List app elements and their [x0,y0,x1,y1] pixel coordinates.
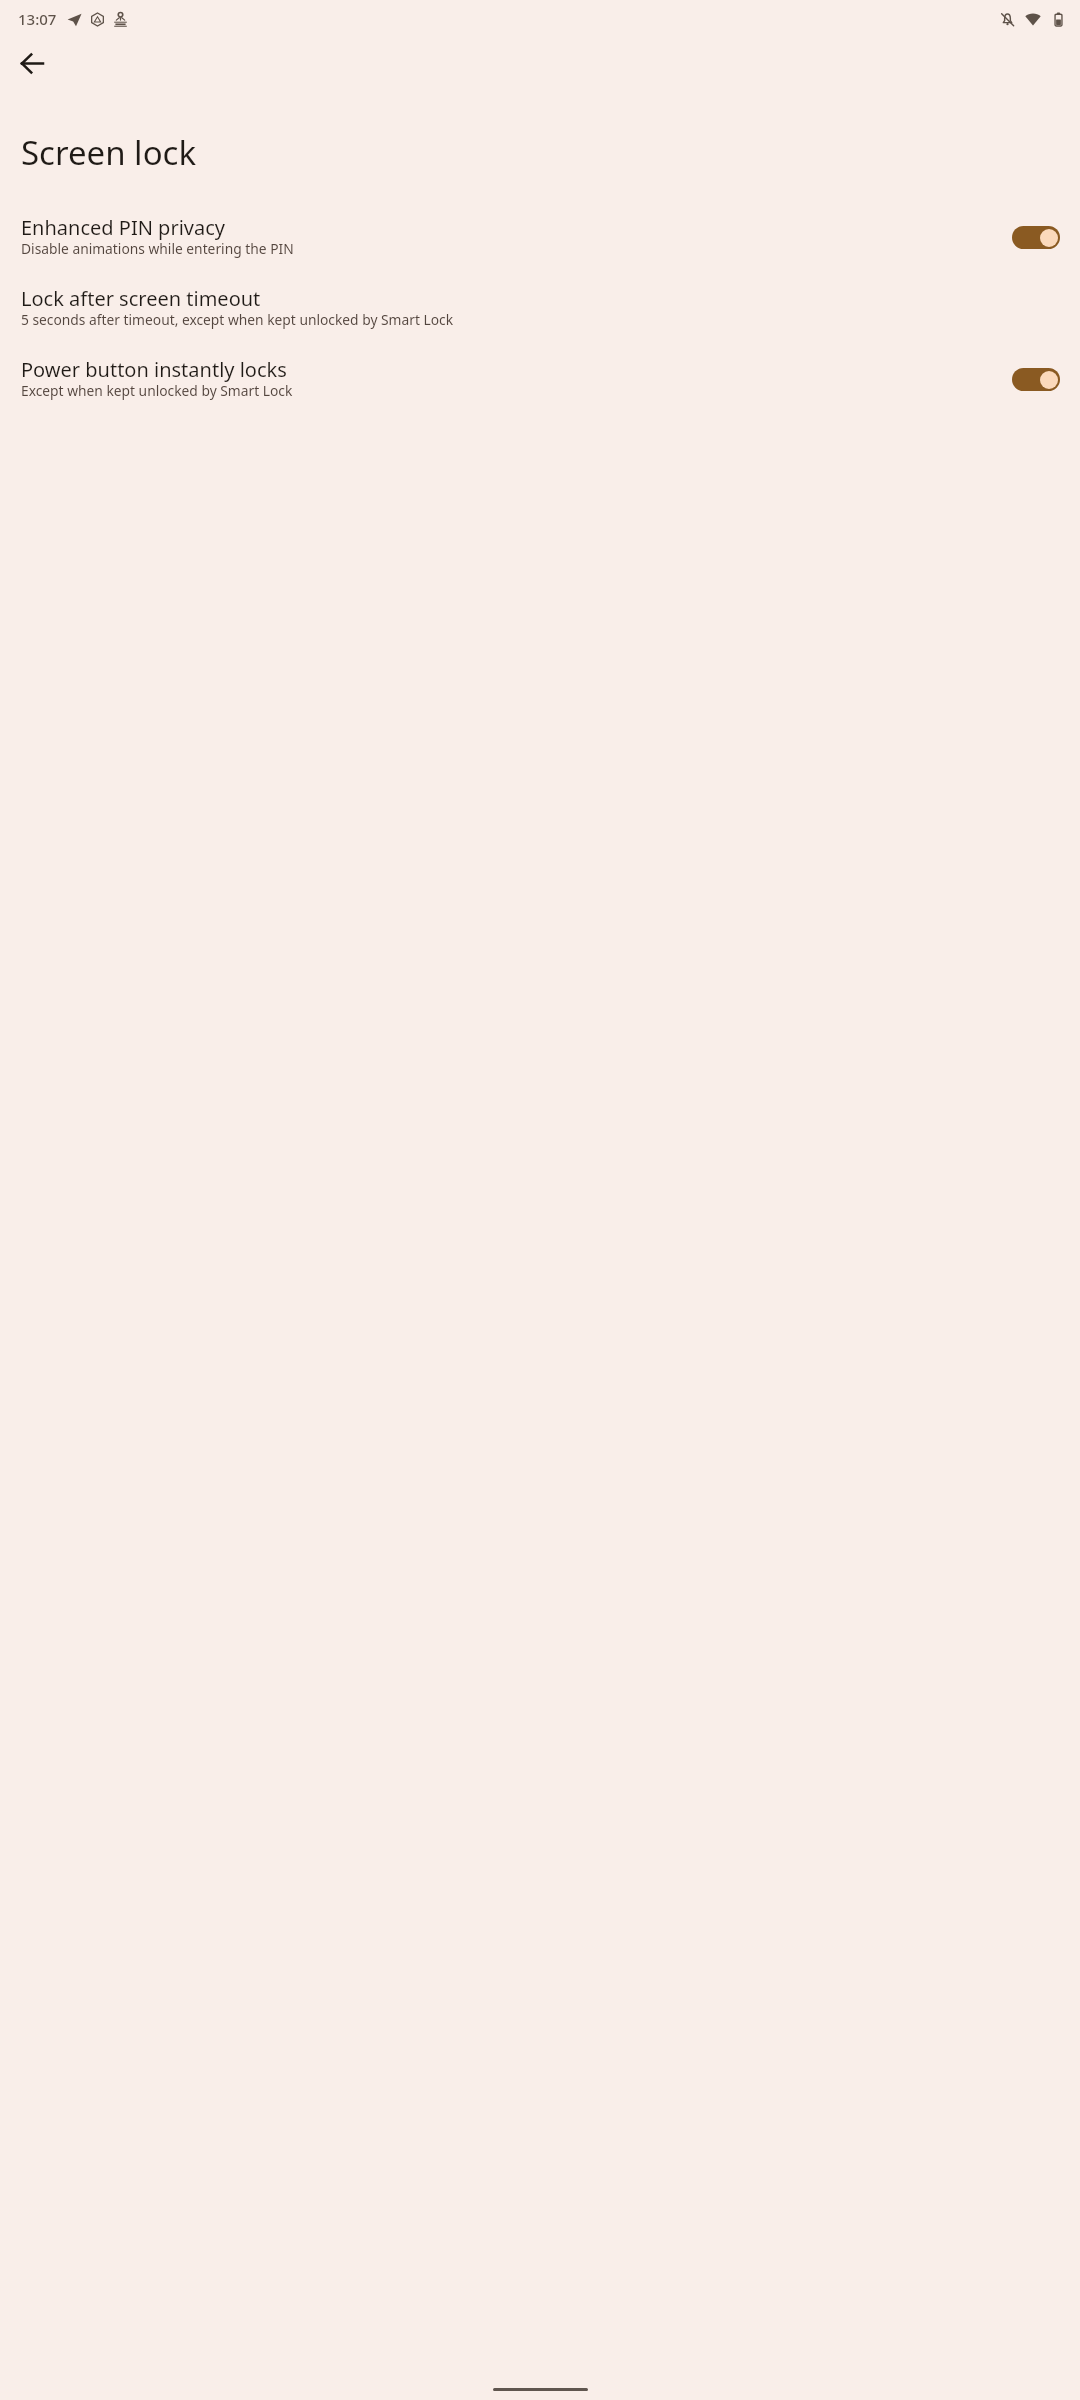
staticText: Lock after screen timeout [21,287,261,311]
button[interactable]: Toggle [1005,217,1067,257]
staticText: Except when kept unlocked by Smart Lock [21,384,293,400]
staticText: 13:07 [18,9,57,29]
staticText: Screen lock [21,130,197,175]
staticText: Enhanced PIN privacy [21,216,225,240]
button[interactable]: Back [8,39,56,87]
staticText: Disable animations while entering the PI… [21,242,294,258]
button[interactable]: Toggle [1005,359,1067,399]
staticText: Power button instantly locks [21,358,287,382]
staticText: 5 seconds after timeout, except when kep… [21,313,454,329]
button[interactable]: Power button instantly locks [0,356,1080,402]
button[interactable]: Enhanced PIN privacy [0,214,1080,260]
button[interactable]: Lock after screen timeout [0,285,1080,331]
